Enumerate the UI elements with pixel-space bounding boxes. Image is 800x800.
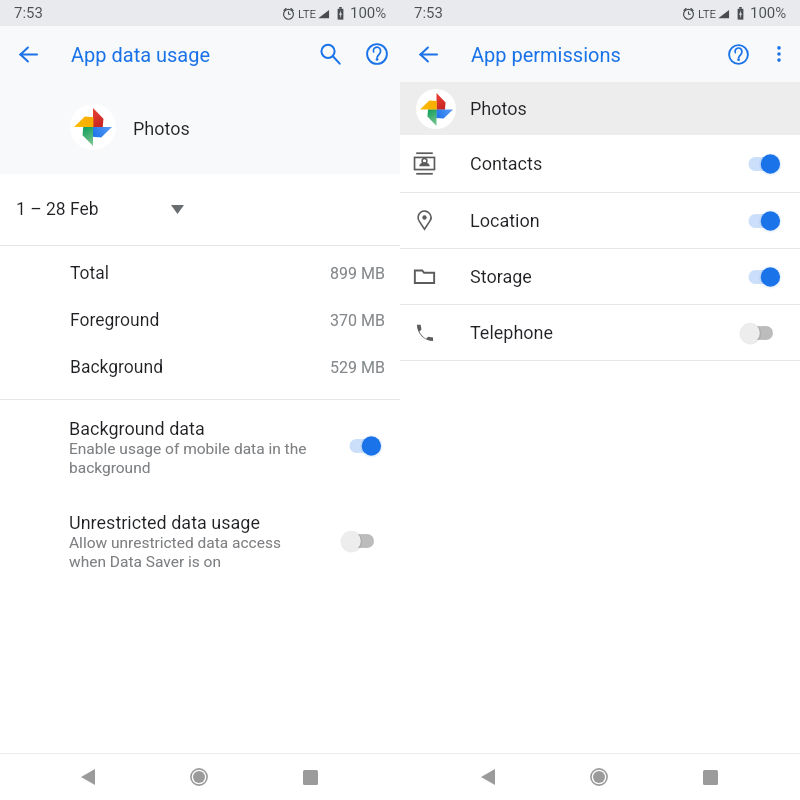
staticText: 7:53 — [14, 4, 43, 22]
staticText: Total — [70, 263, 110, 284]
staticText: 529 MB — [330, 358, 385, 377]
button[interactable] — [744, 207, 784, 235]
button[interactable]: Back — [8, 34, 48, 74]
button[interactable] — [744, 150, 784, 178]
staticText: Background data — [69, 418, 205, 439]
button[interactable]: Telephone — [400, 305, 800, 360]
staticText: LTE — [298, 7, 317, 20]
staticText: Photos — [470, 98, 527, 119]
staticText: 100% — [750, 4, 787, 22]
staticText: Foreground — [70, 310, 160, 331]
button[interactable]: Total — [0, 246, 400, 293]
button[interactable]: 1 – 28 Feb — [0, 174, 400, 245]
button[interactable]: Back — [408, 34, 448, 74]
staticText: App permissions — [471, 43, 621, 66]
button[interactable]: Help — [357, 34, 397, 74]
button[interactable] — [744, 319, 784, 347]
staticText: 7:53 — [414, 4, 443, 22]
staticText: 100% — [350, 4, 387, 22]
staticText: App data usage — [71, 43, 211, 66]
button[interactable]: Unrestricted data usage — [0, 494, 400, 588]
button[interactable]: Home — [575, 754, 623, 800]
button[interactable]: Storage — [400, 249, 800, 304]
button[interactable]: Background data — [0, 400, 400, 494]
button[interactable] — [345, 527, 385, 555]
staticText: Allow unrestricted data access when Data… — [69, 534, 281, 571]
button[interactable]: Recent apps — [286, 754, 334, 800]
button[interactable]: Recent apps — [686, 754, 734, 800]
button[interactable]: Photos — [400, 82, 800, 135]
button[interactable]: Back — [64, 754, 112, 800]
staticText: Telephone — [470, 322, 554, 343]
staticText: Unrestricted data usage — [69, 512, 260, 533]
button[interactable]: Background — [0, 340, 400, 387]
button[interactable]: More options — [759, 34, 799, 74]
staticText: Location — [470, 210, 540, 231]
staticText: Photos — [133, 118, 190, 139]
button[interactable] — [744, 263, 784, 291]
button[interactable] — [345, 432, 385, 460]
staticText: Contacts — [470, 153, 543, 174]
staticText: 1 – 28 Feb — [16, 199, 99, 220]
button[interactable]: Location — [400, 193, 800, 248]
staticText: LTE — [698, 7, 717, 20]
button[interactable]: Help — [718, 34, 758, 74]
button[interactable]: Back — [464, 754, 512, 800]
staticText: 370 MB — [330, 311, 385, 330]
button[interactable]: Search — [310, 34, 350, 74]
button[interactable]: Foreground — [0, 293, 400, 340]
button[interactable]: Contacts — [400, 135, 800, 192]
button[interactable]: Home — [175, 754, 223, 800]
staticText: Enable usage of mobile data in the backg… — [69, 440, 307, 477]
staticText: 899 MB — [330, 264, 385, 283]
staticText: Storage — [470, 266, 532, 287]
staticText: Background — [70, 357, 164, 378]
